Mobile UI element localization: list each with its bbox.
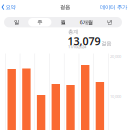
staticText: 년: [107, 19, 112, 25]
button[interactable]: 월: [51, 18, 75, 26]
button[interactable]: 주: [28, 18, 51, 26]
button[interactable]: 6개월: [75, 18, 98, 26]
staticText: 13,079: [67, 34, 100, 48]
staticText: 주: [37, 19, 42, 25]
staticText: 월: [60, 19, 65, 25]
staticText: 걸음: [60, 4, 70, 10]
staticText: 걸음: [101, 40, 111, 47]
staticText: 11/10/2024: [68, 44, 86, 49]
staticText: 일: [14, 19, 19, 25]
staticText: 총계: [68, 28, 78, 35]
staticText: 6개월: [80, 19, 93, 26]
staticText: 20,000: [110, 54, 121, 59]
staticText: 데이터 추가: [100, 4, 127, 10]
button[interactable]: 요약: [0, 3, 15, 12]
button[interactable]: 데이터 추가: [100, 3, 130, 12]
button[interactable]: 일: [5, 18, 28, 26]
staticText: 요약: [5, 4, 15, 10]
staticText: 10,000: [110, 94, 121, 99]
button[interactable]: 년: [98, 18, 121, 26]
